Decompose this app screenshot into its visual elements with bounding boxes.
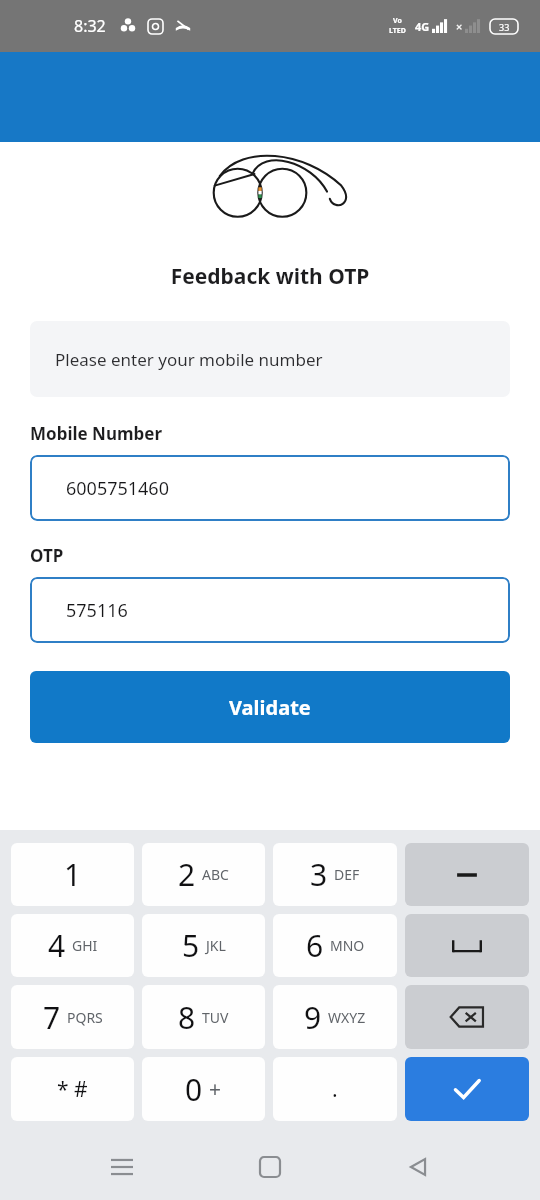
button[interactable]: Recents [96, 1141, 148, 1193]
button[interactable]: Back [392, 1141, 444, 1193]
other: Enter [450, 1072, 484, 1106]
button[interactable]: Backspace [405, 985, 529, 1049]
staticText: 6005751460 [66, 476, 169, 501]
staticText: 6 [306, 925, 324, 966]
button[interactable]: * # [11, 1057, 134, 1121]
button[interactable]: 6 [273, 914, 397, 977]
staticText: PQRS [67, 1008, 103, 1027]
staticText: . [332, 1075, 338, 1104]
staticText: 3 [310, 854, 328, 895]
staticText: 4 [48, 925, 66, 966]
staticText: Mobile Number [30, 422, 163, 445]
staticText: MNO [330, 936, 365, 955]
staticText: 2 [178, 854, 196, 895]
staticText: 4G [415, 19, 430, 34]
button[interactable]: 9 [273, 985, 397, 1049]
staticText: 33 [499, 21, 510, 33]
staticText: 1 [64, 854, 82, 895]
staticText: 7 [43, 997, 61, 1038]
staticText: GHI [72, 936, 98, 955]
staticText: 0 [185, 1069, 203, 1110]
staticText: DEF [334, 865, 360, 884]
button[interactable]: Validate [30, 671, 510, 743]
button[interactable]: 4 [11, 914, 134, 977]
staticText: WXYZ [328, 1008, 366, 1027]
button[interactable]: . [273, 1057, 397, 1121]
staticText: Please enter your mobile number [55, 348, 323, 371]
staticText: 575116 [66, 598, 128, 623]
button[interactable]: 6005751460 [30, 455, 510, 521]
button[interactable]: Space [405, 914, 529, 977]
staticText: Vo [393, 16, 402, 26]
staticText: 5 [182, 925, 200, 966]
staticText: TUV [202, 1008, 229, 1027]
button[interactable]: Enter [405, 1057, 529, 1121]
staticText: × [456, 19, 463, 34]
button[interactable]: 7 [11, 985, 134, 1049]
staticText: + [209, 1075, 222, 1104]
button[interactable]: 1 [11, 843, 134, 906]
button[interactable]: 3 [273, 843, 397, 906]
button[interactable]: 0 [142, 1057, 265, 1121]
button[interactable]: Minus [405, 843, 529, 906]
staticText: OTP [30, 544, 64, 567]
staticText: LTED [389, 26, 406, 36]
other: Space [452, 937, 482, 955]
staticText: 8 [178, 997, 196, 1038]
staticText: ABC [202, 865, 229, 884]
other: Minus [454, 862, 480, 888]
staticText: JKL [206, 936, 226, 955]
staticText: 8:32 [74, 15, 106, 37]
button[interactable]: 2 [142, 843, 265, 906]
staticText: Validate [229, 694, 311, 721]
staticText: Feedback with OTP [0, 262, 540, 291]
staticText: 9 [304, 997, 322, 1038]
button[interactable]: 8 [142, 985, 265, 1049]
button[interactable]: 5 [142, 914, 265, 977]
button[interactable]: Home [244, 1141, 296, 1193]
button[interactable]: 575116 [30, 577, 510, 643]
staticText: * # [57, 1075, 88, 1104]
other: Backspace [450, 1005, 484, 1029]
